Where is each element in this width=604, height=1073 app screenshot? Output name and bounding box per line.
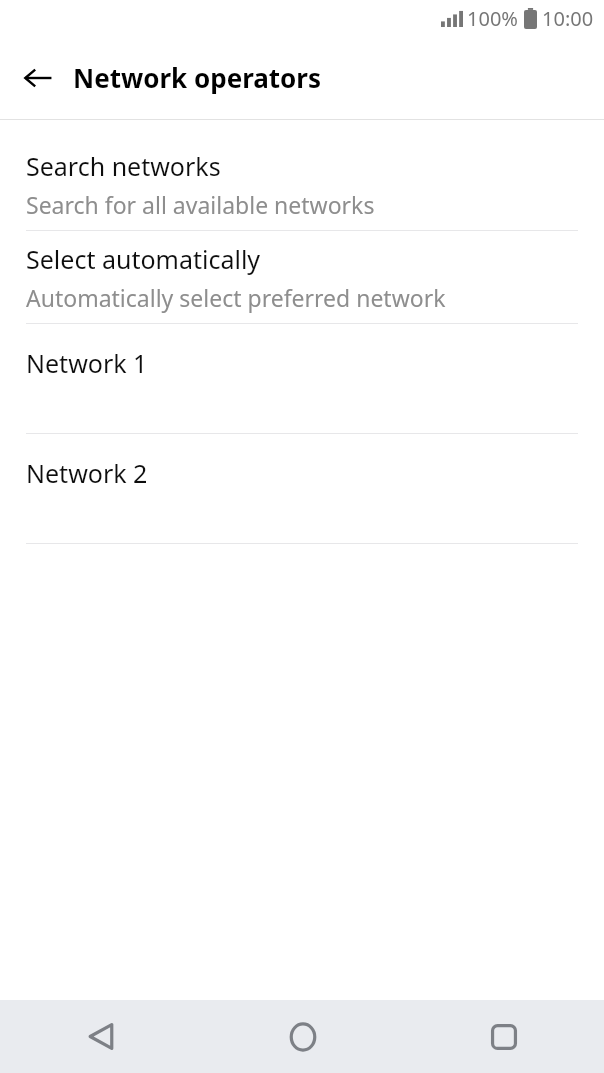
button[interactable]: Network 2 xyxy=(0,434,604,543)
staticText: Network 2 xyxy=(26,456,148,490)
button[interactable]: Network 1 xyxy=(0,324,604,433)
staticText: Network 1 xyxy=(26,346,148,380)
button[interactable]: Search networks xyxy=(0,138,604,230)
staticText: Network operators xyxy=(73,60,322,95)
staticText: 100% xyxy=(467,5,518,32)
button[interactable]: Recent apps xyxy=(403,1000,604,1073)
staticText: Automatically select preferred network xyxy=(26,282,446,313)
button[interactable]: Back xyxy=(0,1000,202,1073)
staticText: Search for all available networks xyxy=(26,189,375,220)
staticText: Select automatically xyxy=(26,242,261,276)
staticText: Search networks xyxy=(26,149,221,183)
staticText: 10:00 xyxy=(542,5,594,32)
button[interactable]: Select automatically xyxy=(0,231,604,323)
button[interactable]: Back xyxy=(12,52,64,104)
button[interactable]: Home xyxy=(202,1000,403,1073)
